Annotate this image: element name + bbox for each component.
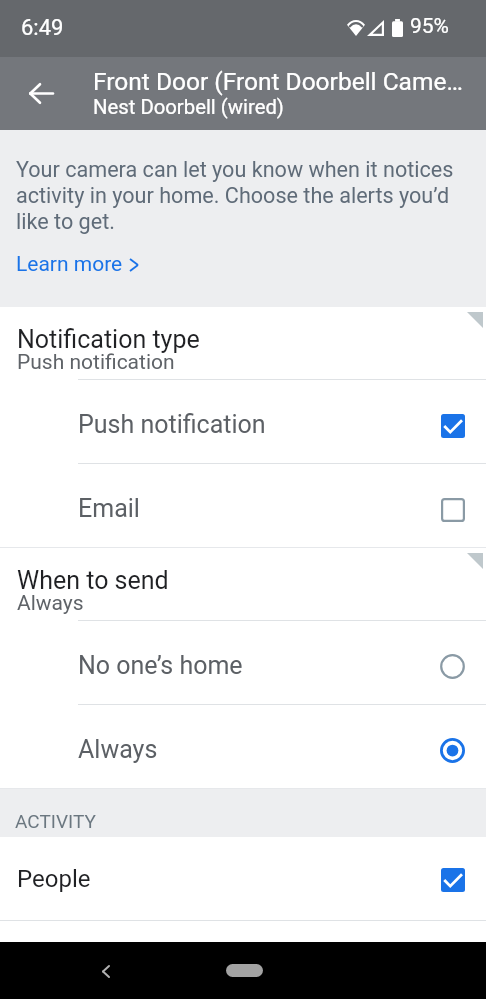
staticText: People	[17, 865, 91, 893]
staticText: Front Door (Front Doorbell Came…	[93, 67, 463, 96]
staticText: Email	[78, 494, 140, 523]
staticText: ACTIVITY	[15, 810, 96, 832]
button[interactable]: Home	[226, 964, 263, 977]
button[interactable]: Email	[0, 464, 486, 548]
staticText: Your camera can let you know when it not…	[16, 157, 472, 234]
staticText: Always	[78, 735, 158, 764]
staticText: Always	[17, 591, 84, 616]
button[interactable]: Push notification	[0, 380, 486, 464]
staticText: No one’s home	[78, 651, 243, 680]
button[interactable]: No one’s home	[0, 621, 486, 705]
staticText: Learn more	[16, 252, 123, 277]
button[interactable]: Back	[5, 57, 78, 130]
staticText: Nest Doorbell (wired)	[93, 95, 284, 119]
staticText: Push notification	[78, 410, 266, 439]
staticText: Push notification	[17, 350, 175, 375]
staticText: Notification type	[17, 325, 200, 354]
button[interactable]: Always	[0, 705, 486, 789]
button[interactable]: Back	[86, 951, 126, 991]
staticText: 95%	[410, 14, 449, 39]
staticText: When to send	[17, 566, 169, 595]
button[interactable]: Learn more	[16, 248, 139, 281]
button[interactable]: People	[0, 837, 486, 921]
staticText: 6:49	[21, 15, 64, 41]
